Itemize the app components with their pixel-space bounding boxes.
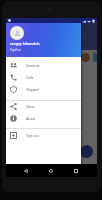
button[interactable]: About: [6, 112, 81, 124]
button[interactable]: Share: [6, 100, 81, 112]
button[interactable]: New contact: [80, 145, 93, 158]
button[interactable]: Sign out: [6, 129, 81, 141]
staticText: About: [26, 116, 36, 120]
button[interactable]: Recent apps: [70, 164, 82, 177]
button[interactable]: Contacts: [6, 59, 81, 71]
staticText: Contacts: [26, 63, 40, 67]
staticText: Calls: [26, 75, 34, 79]
staticText: Sign out: [26, 133, 39, 137]
staticText: Shipped: [26, 87, 39, 91]
staticText: YapFon: [10, 48, 21, 52]
staticText: sergey klimovich: [10, 41, 40, 46]
staticText: Share: [26, 104, 35, 108]
button[interactable]: Back: [20, 164, 32, 177]
button[interactable]: Shipped: [6, 83, 81, 95]
button[interactable]: Home: [45, 164, 57, 177]
button[interactable]: Calls: [6, 71, 81, 83]
